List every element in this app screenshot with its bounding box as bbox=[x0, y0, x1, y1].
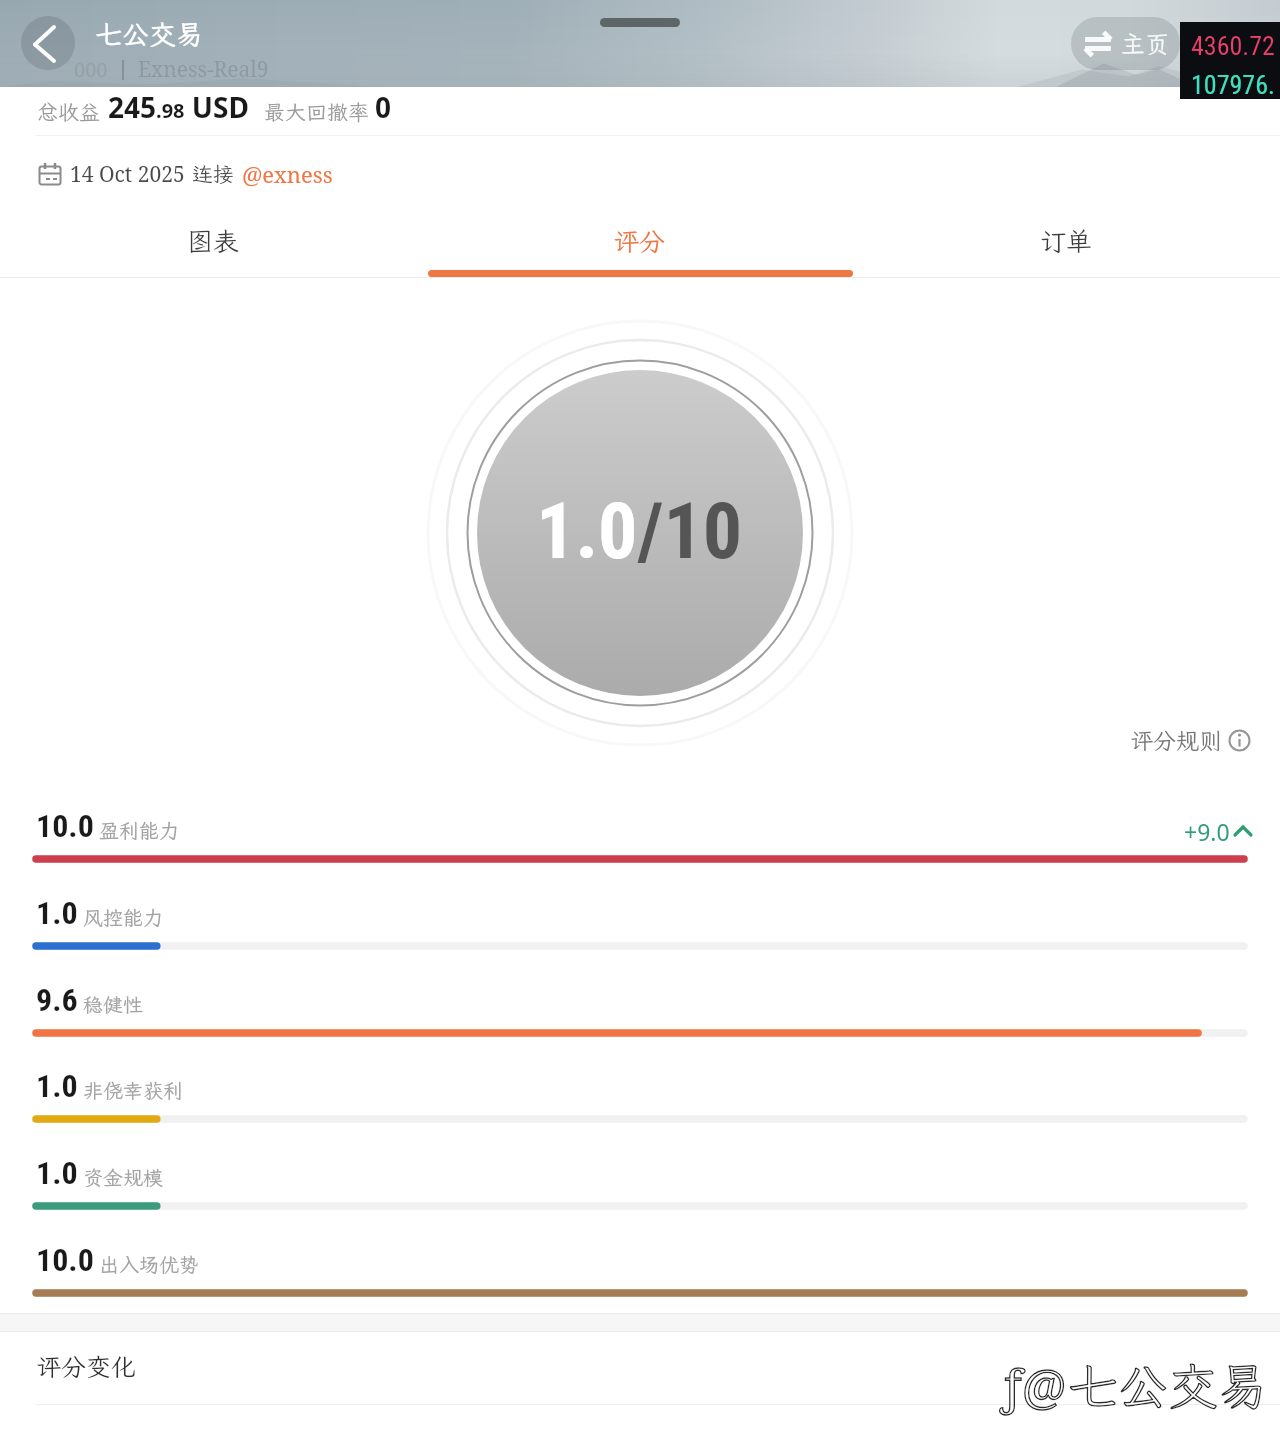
staticText: 七公交易 bbox=[95, 16, 203, 52]
staticText: 连接 bbox=[192, 160, 234, 188]
staticText: 245.98 USD bbox=[108, 88, 249, 126]
staticText: 4360.72 bbox=[1191, 31, 1275, 61]
staticText: 图表 bbox=[187, 224, 240, 258]
staticText: 1.0 bbox=[36, 894, 78, 932]
staticText: 非侥幸获利 bbox=[83, 1077, 183, 1103]
staticText: 稳健性 bbox=[83, 991, 143, 1017]
button[interactable]: 4360.72 bbox=[1180, 22, 1280, 99]
staticText: 盈利能力 bbox=[99, 817, 179, 843]
staticText: 评分变化 bbox=[36, 1350, 137, 1383]
staticText: 10.0 bbox=[36, 1241, 94, 1279]
staticText: 000 bbox=[74, 56, 108, 83]
button[interactable]: Back bbox=[21, 16, 75, 70]
button[interactable]: 出入场优势 10.0 bbox=[0, 1230, 1280, 1317]
staticText: 评分规则 bbox=[1130, 725, 1222, 755]
button[interactable]: 评分 bbox=[426, 201, 853, 278]
staticText: 1.0/10 bbox=[536, 486, 743, 577]
button[interactable]: 评分变化 bbox=[0, 1332, 1280, 1404]
staticText: Exness-Real9 bbox=[138, 55, 269, 84]
button[interactable]: 订单 bbox=[853, 201, 1280, 278]
staticText: 最大回撤率 bbox=[264, 98, 369, 126]
button[interactable]: 稳健性 9.6 bbox=[0, 970, 1280, 1057]
staticText: 1.0 bbox=[36, 1154, 78, 1192]
button[interactable]: 非侥幸获利 1.0 bbox=[0, 1056, 1280, 1143]
staticText: 9.6 bbox=[36, 981, 78, 1019]
staticText: 0 bbox=[375, 88, 392, 126]
staticText: @exness bbox=[242, 159, 333, 189]
staticText: 风控能力 bbox=[83, 904, 163, 930]
staticText: 107976. bbox=[1191, 70, 1275, 99]
button[interactable]: 资金规模 1.0 bbox=[0, 1143, 1280, 1230]
staticText: 1.0 bbox=[36, 1067, 78, 1105]
staticText: 评分 bbox=[613, 224, 666, 258]
staticText: 10.0 bbox=[36, 807, 94, 845]
staticText: +9.0 bbox=[1184, 816, 1230, 847]
staticText: ƒ@ bbox=[1000, 1353, 1066, 1418]
staticText: 七公交易 bbox=[1068, 1352, 1268, 1418]
button[interactable]: 图表 bbox=[0, 201, 426, 278]
staticText: 出入场优势 bbox=[99, 1251, 199, 1277]
staticText: 主页 bbox=[1121, 28, 1169, 60]
staticText: 资金规模 bbox=[83, 1164, 163, 1190]
staticText: 订单 bbox=[1040, 224, 1093, 258]
button[interactable]: 盈利能力 10.0 bbox=[0, 796, 1280, 883]
staticText: 14 Oct 2025 bbox=[70, 160, 185, 189]
button[interactable]: 风控能力 1.0 bbox=[0, 883, 1280, 970]
staticText: 总收益 bbox=[37, 98, 100, 126]
button[interactable]: 评分规则 bbox=[1126, 721, 1255, 759]
button[interactable]: 主页 bbox=[1071, 17, 1180, 70]
